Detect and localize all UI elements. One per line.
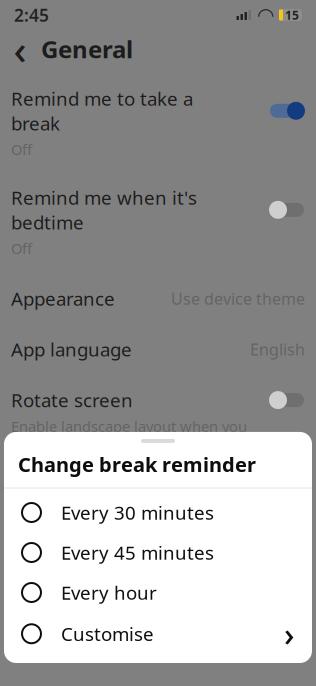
button[interactable]: Remind me to take a break xyxy=(0,86,316,159)
button[interactable]: Remind me when it's bedtime xyxy=(0,185,316,258)
button[interactable]: App language xyxy=(0,337,316,362)
staticText: Every 30 minutes xyxy=(61,500,214,525)
staticText: ‹ xyxy=(13,22,26,75)
button[interactable]: Every 45 minutes xyxy=(4,532,312,572)
staticText: App language xyxy=(11,337,132,362)
button[interactable]: Back xyxy=(7,34,33,64)
staticText: Enable landscape layout when you rotate … xyxy=(11,416,247,475)
button[interactable]: Every 30 minutes xyxy=(4,492,312,532)
staticText: This helps to hide potentially mature vi… xyxy=(11,530,272,608)
staticText: 15 xyxy=(285,7,299,23)
staticText: General xyxy=(41,33,133,65)
staticText: 2:45 xyxy=(14,3,49,26)
button[interactable]: Rotate screen xyxy=(0,388,316,475)
staticText: Appearance xyxy=(11,286,115,311)
staticText: Remind me to take a break xyxy=(11,86,193,136)
button[interactable]: Customise xyxy=(4,612,312,655)
staticText: Every hour xyxy=(61,580,157,605)
staticText: Off xyxy=(11,140,32,159)
staticText: Off xyxy=(11,239,32,258)
button[interactable]: Every hour xyxy=(4,572,312,612)
button[interactable]: Appearance xyxy=(0,286,316,311)
staticText: ◠ xyxy=(258,4,273,26)
staticText: Restricted Mode xyxy=(11,501,156,526)
button[interactable]: Restricted Mode xyxy=(0,501,316,608)
staticText: English xyxy=(250,339,305,360)
staticText: Customise xyxy=(61,621,154,646)
staticText: Every 45 minutes xyxy=(61,540,214,565)
staticText: Rotate screen xyxy=(11,388,133,412)
staticText: Remind me when it's bedtime xyxy=(11,185,197,235)
staticText: Use device theme xyxy=(171,288,305,309)
staticText: › xyxy=(284,612,294,655)
staticText: Change break reminder xyxy=(18,451,256,477)
